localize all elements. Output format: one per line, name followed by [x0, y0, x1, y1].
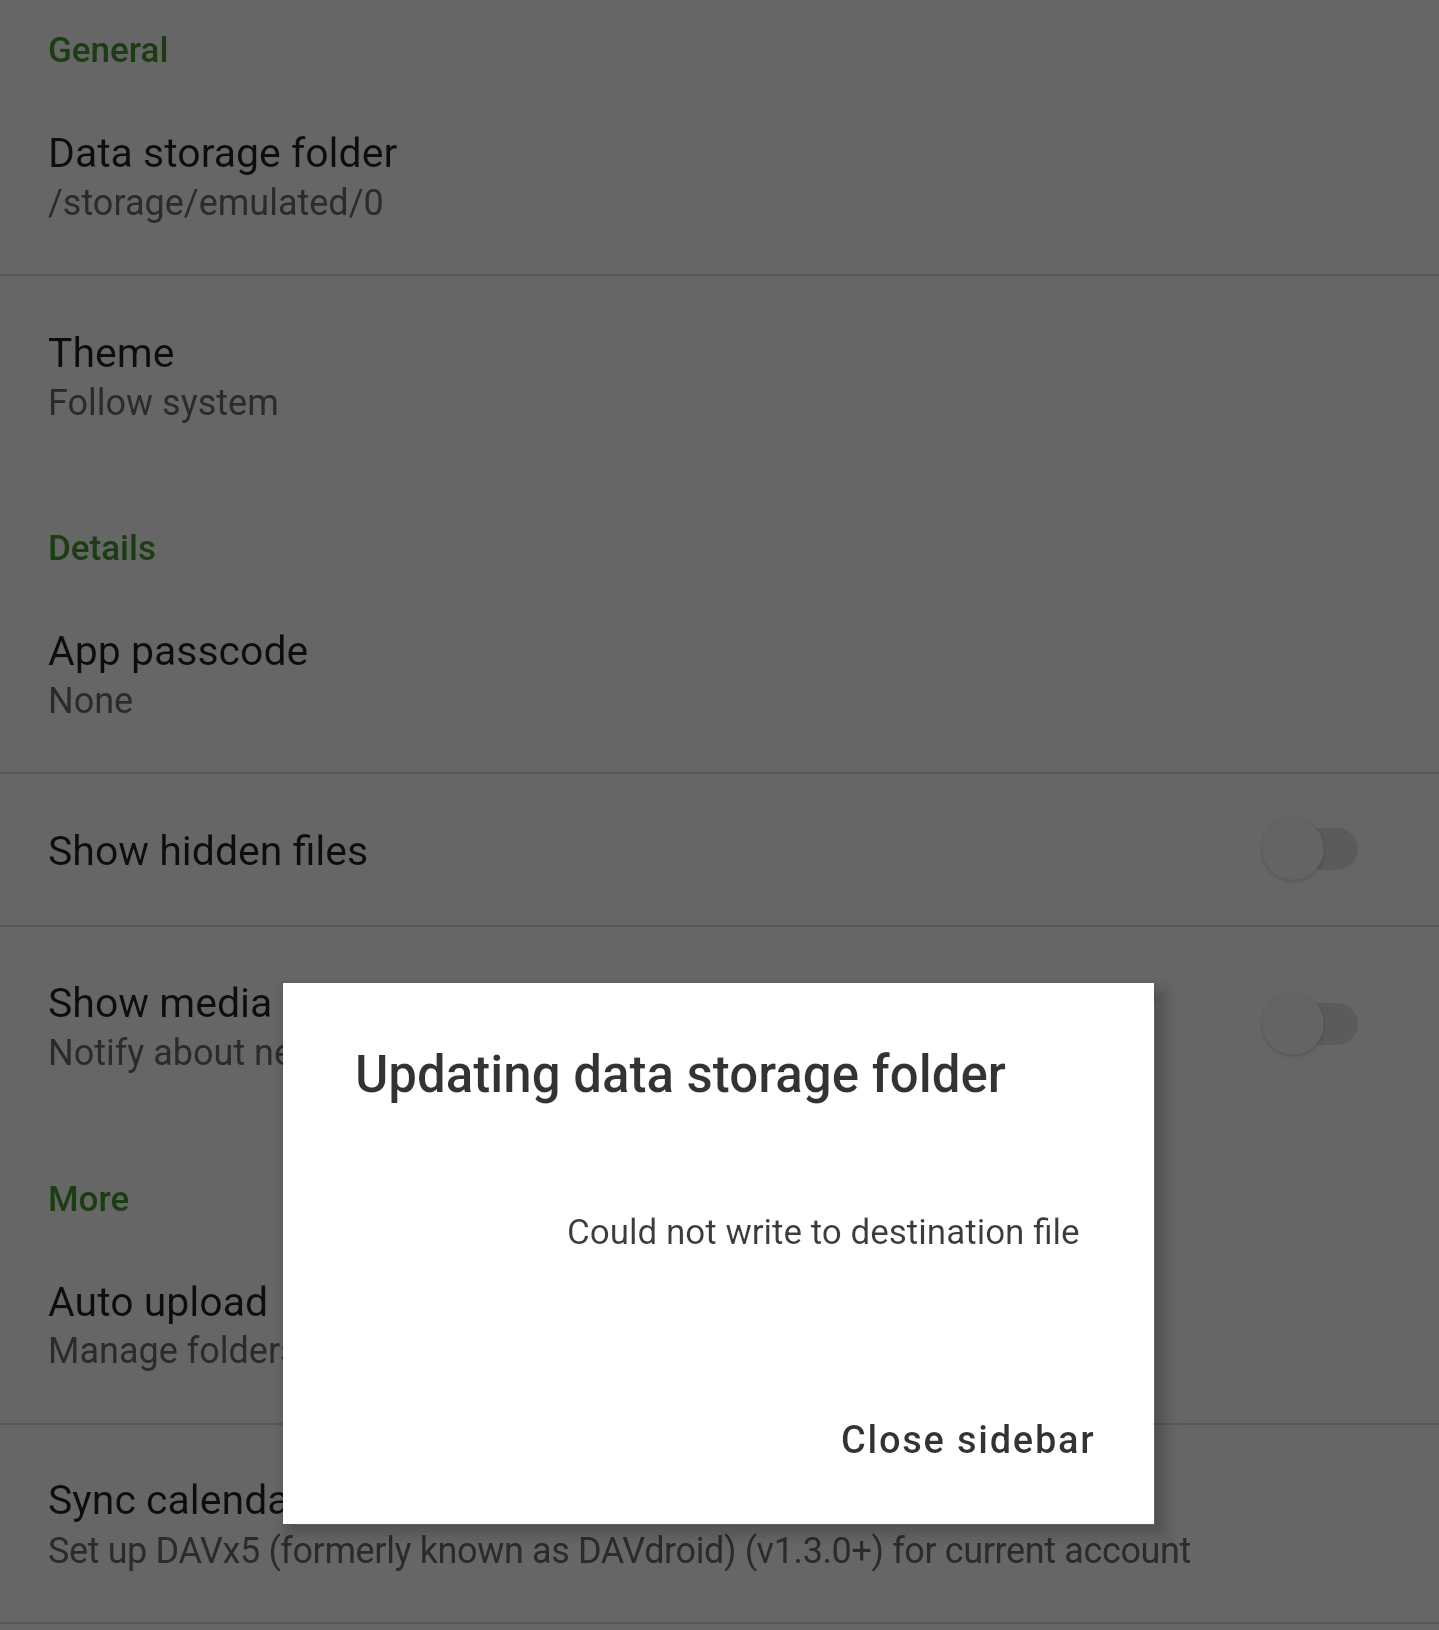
button[interactable]: Show hidden files toggle — [1238, 801, 1382, 897]
button[interactable]: Dismiss dialog — [0, 0, 1439, 1630]
staticText: Theme — [48, 329, 175, 377]
staticText: Auto upload — [48, 1278, 269, 1326]
button[interactable] — [0, 774, 1439, 925]
button[interactable]: Close sidebar — [811, 1396, 1126, 1485]
staticText: Show hidden files — [48, 827, 369, 875]
staticText: Notify about new photos — [48, 1032, 441, 1074]
button[interactable] — [0, 1244, 1439, 1422]
staticText: Set up DAVx5 (formerly known as DAVdroid… — [48, 1530, 1191, 1572]
button[interactable] — [0, 96, 1439, 274]
button[interactable]: Show media section toggle — [1238, 976, 1382, 1072]
staticText: /storage/emulated/0 — [48, 182, 384, 224]
staticText: Show media section — [48, 979, 417, 1027]
staticText: Details — [48, 528, 156, 569]
button[interactable] — [0, 276, 1439, 452]
button[interactable] — [0, 1425, 1439, 1622]
button[interactable] — [0, 927, 1439, 1109]
button[interactable] — [0, 592, 1439, 772]
staticText: Follow system — [48, 382, 279, 424]
staticText: Updating data storage folder — [355, 1045, 1006, 1105]
staticText: More — [48, 1179, 130, 1220]
staticText: General — [48, 30, 169, 71]
staticText: Could not write to destination file — [567, 1212, 1080, 1253]
staticText: Manage folders — [48, 1330, 299, 1372]
staticText: Data storage folder — [48, 129, 398, 177]
staticText: Sync calendars — [48, 1476, 325, 1524]
staticText: None — [48, 680, 134, 722]
staticText: Close sidebar — [841, 1418, 1096, 1463]
staticText: App passcode — [48, 627, 309, 675]
